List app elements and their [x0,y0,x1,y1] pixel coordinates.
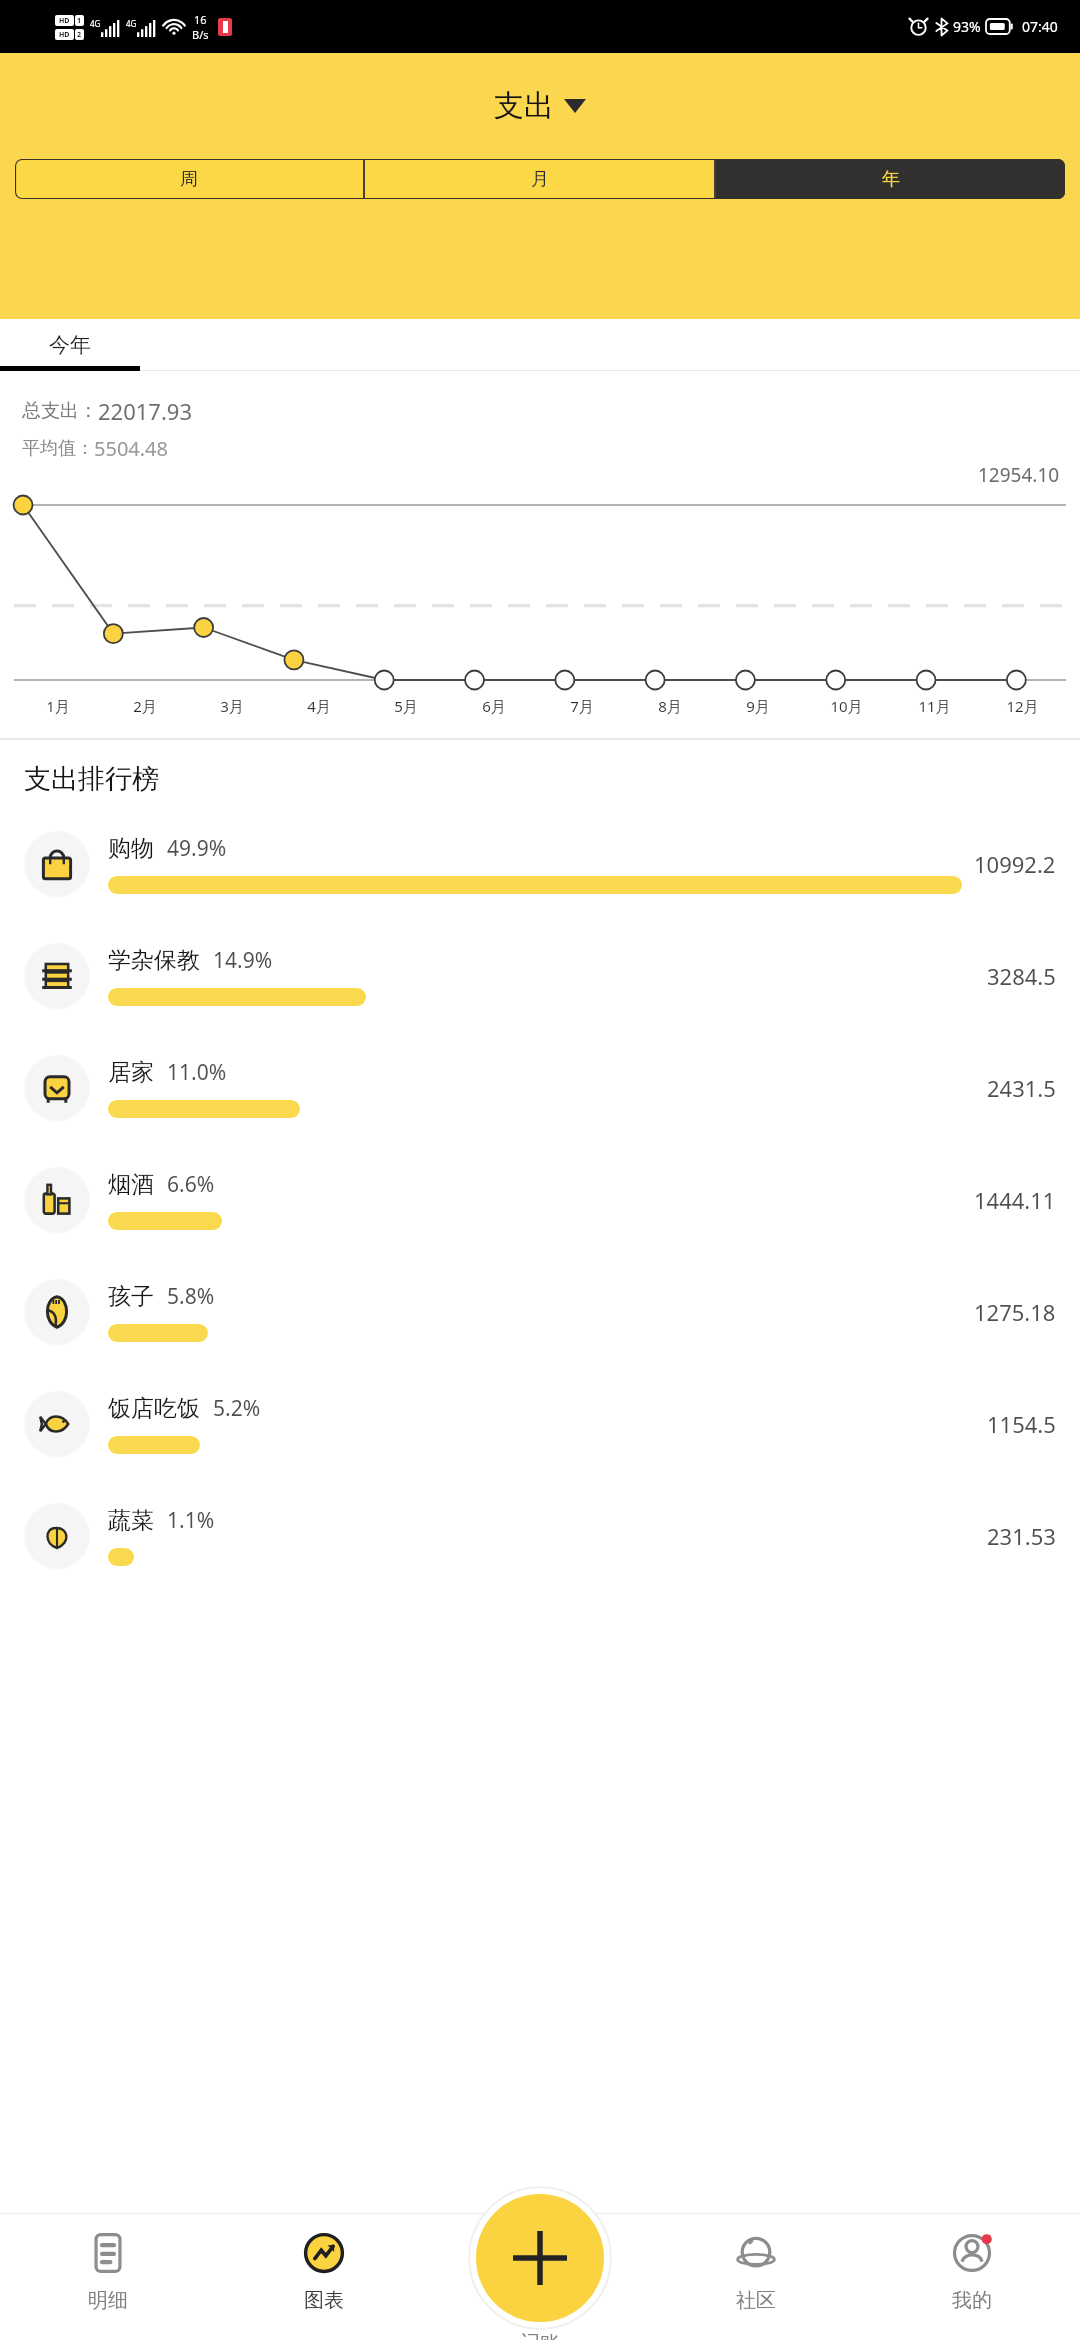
button[interactable]: 学杂保教 [0,920,1080,1032]
staticText: 明细 [88,2288,128,2313]
staticText: 49.9% [167,834,227,863]
button[interactable]: 年 [716,159,1065,199]
staticText: 11月 [918,696,951,716]
staticText: 5月 [394,696,418,716]
staticText: 记账 [520,2331,560,2340]
staticText: 平均值： [22,437,94,460]
staticText: 5504.48 [94,435,168,462]
button[interactable]: 周 [15,159,363,199]
staticText: 烟酒 [108,1170,154,1199]
button[interactable]: 居家 [0,1032,1080,1144]
staticText: 总支出： [22,399,98,423]
button[interactable]: 饭店吃饭 [0,1368,1080,1480]
button[interactable]: 孩子 [0,1256,1080,1368]
staticText: 居家 [108,1058,154,1087]
staticText: 3284.5 [987,961,1056,991]
staticText: 12954.10 [978,462,1060,488]
staticText: 月 [531,168,549,191]
staticText: 14.9% [213,946,273,975]
button[interactable]: 支出 切换类型 [0,53,1080,159]
button[interactable]: 记账 添加 [476,2194,604,2322]
staticText: 今年 [49,332,91,358]
button[interactable]: 今年 [0,319,140,371]
staticText: HD [59,30,70,40]
staticText: 我的 [952,2288,992,2313]
staticText: 11.0% [167,1058,227,1087]
staticText: 社区 [736,2288,776,2313]
staticText: 9月 [746,696,770,716]
button[interactable]: 烟酒 [0,1144,1080,1256]
staticText: 学杂保教 [108,946,200,975]
staticText: 孩子 [108,1282,154,1311]
staticText: 4G [126,18,137,29]
staticText: 2 [77,30,82,40]
staticText: 支出 [494,87,554,125]
button[interactable]: 蔬菜 [0,1480,1080,1592]
staticText: 5.8% [167,1282,215,1311]
staticText: 12月 [1006,696,1039,716]
staticText: 8月 [658,696,682,716]
button[interactable]: 月 [365,159,714,199]
staticText: 10月 [830,696,863,716]
staticText: 93% [953,17,981,36]
staticText: 饭店吃饭 [108,1394,200,1423]
staticText: 1 [77,16,82,26]
staticText: 3月 [220,696,244,716]
staticText: 支出排行榜 [24,762,159,796]
staticText: 2431.5 [987,1073,1056,1103]
staticText: 6月 [482,696,506,716]
staticText: 16 [194,12,207,27]
button[interactable]: 社区 [648,2213,864,2340]
staticText: 6.6% [167,1170,215,1199]
staticText: 购物 [108,834,154,863]
staticText: 07:40 [1022,17,1058,36]
button[interactable]: 明细 [0,2213,216,2340]
staticText: HD [59,16,70,26]
staticText: 1444.11 [974,1185,1056,1215]
staticText: 4月 [307,696,331,716]
staticText: 2月 [133,696,157,716]
staticText: 1月 [46,696,70,716]
staticText: 年 [882,168,900,191]
button[interactable]: 图表 [216,2213,432,2340]
staticText: 7月 [570,696,594,716]
button[interactable]: 我的 [864,2213,1080,2340]
button[interactable]: 购物 [0,808,1080,920]
staticText: 蔬菜 [108,1506,154,1535]
staticText: 4G [90,18,101,29]
staticText: 22017.93 [98,396,192,426]
staticText: 231.53 [987,1521,1056,1551]
staticText: B/s [192,27,209,42]
staticText: 1275.18 [974,1297,1056,1327]
staticText: 1154.5 [987,1409,1056,1439]
staticText: 图表 [304,2288,344,2313]
staticText: 5.2% [213,1394,261,1423]
staticText: 1.1% [167,1506,215,1535]
staticText: 10992.2 [974,849,1056,879]
staticText: 周 [180,168,198,191]
